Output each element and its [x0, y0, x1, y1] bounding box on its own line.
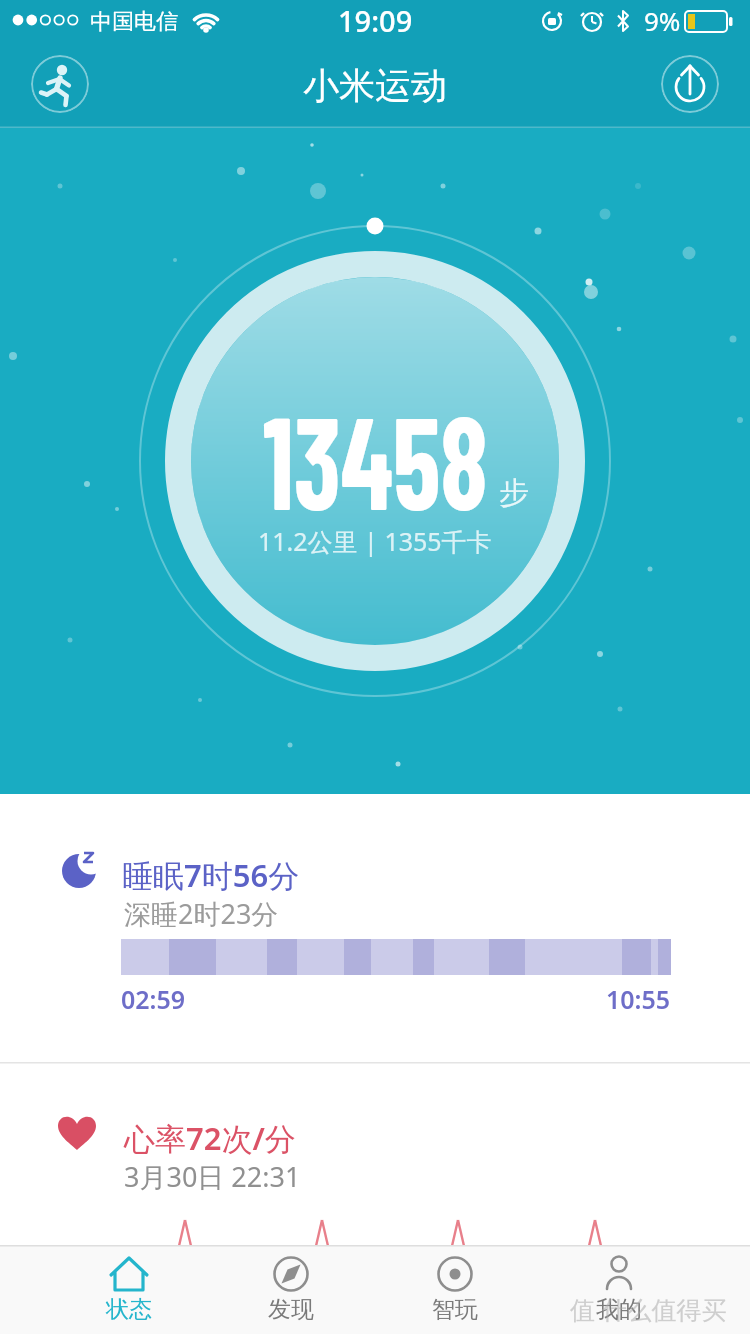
staticText: 步: [499, 474, 529, 512]
button[interactable]: [31, 55, 89, 113]
staticText: 状态: [106, 1295, 152, 1324]
button[interactable]: 睡眠7时56分: [0, 794, 750, 1063]
staticText: 睡眠7时56分: [122, 854, 300, 896]
button[interactable]: [165, 251, 585, 671]
staticText: 13458: [263, 380, 488, 536]
button[interactable]: 我的: [559, 1245, 679, 1334]
button[interactable]: 发现: [231, 1245, 351, 1334]
button[interactable]: 状态: [69, 1245, 189, 1334]
staticText: 中国电信: [90, 8, 178, 36]
staticText: 智玩: [432, 1295, 478, 1324]
staticText: 发现: [268, 1295, 314, 1324]
staticText: 11.2公里 | 1355千卡: [258, 524, 492, 558]
button[interactable]: 心率72次/分: [0, 1063, 750, 1245]
staticText: 小米运动: [303, 63, 447, 108]
button[interactable]: 智玩: [395, 1245, 515, 1334]
staticText: 10:55: [606, 982, 671, 1016]
staticText: 9%: [644, 3, 681, 38]
staticText: 值 什么值得买: [570, 1292, 727, 1326]
staticText: 19:09: [338, 1, 413, 40]
staticText: 心率72次/分: [124, 1117, 296, 1159]
staticText: 02:59: [121, 982, 186, 1016]
staticText: 我的: [596, 1295, 642, 1324]
button[interactable]: [661, 55, 719, 113]
staticText: 3月30日 22:31: [124, 1158, 301, 1195]
staticText: 深睡2时23分: [124, 895, 279, 932]
